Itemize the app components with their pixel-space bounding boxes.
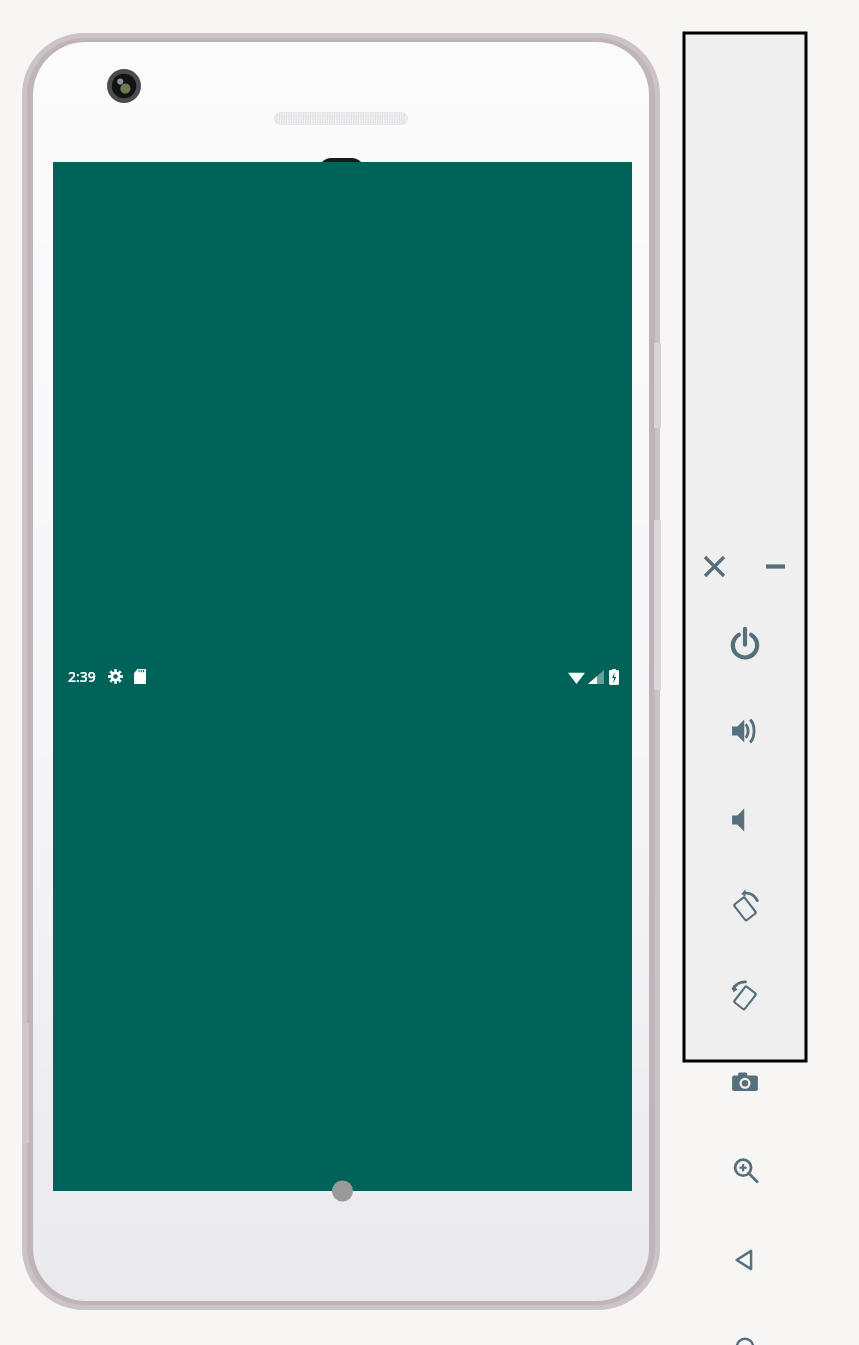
button[interactable]: Take screenshot bbox=[684, 568, 806, 1345]
button[interactable]: Home bbox=[684, 833, 806, 1345]
button[interactable]: Rotate right bbox=[684, 482, 806, 1345]
button[interactable]: Minimize bbox=[745, 539, 806, 593]
button[interactable]: Volume up bbox=[684, 217, 806, 1245]
button[interactable]: More bbox=[684, 1009, 806, 1345]
staticText: 2:39 bbox=[68, 667, 96, 686]
button[interactable]: Rotate left bbox=[684, 393, 806, 1345]
button[interactable]: Close bbox=[684, 539, 745, 593]
button[interactable]: Back bbox=[684, 746, 806, 1345]
button[interactable]: Zoom bbox=[684, 656, 806, 1345]
button[interactable]: Overview bbox=[684, 921, 806, 1345]
button[interactable]: Volume down bbox=[684, 306, 806, 1334]
button[interactable]: Power bbox=[684, 129, 806, 1157]
